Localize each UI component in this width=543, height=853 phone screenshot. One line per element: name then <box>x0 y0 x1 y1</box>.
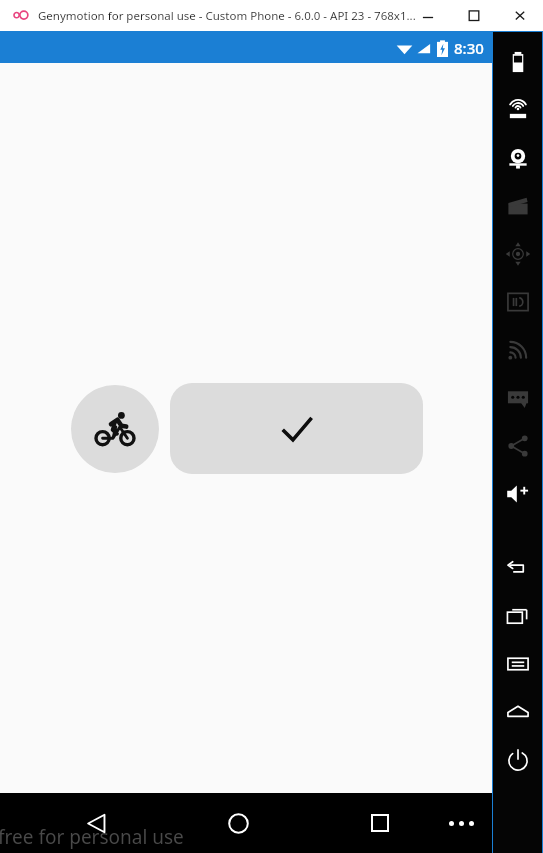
staticText: free for personal use <box>0 824 184 850</box>
button[interactable]: Identifiers <box>493 278 542 326</box>
button[interactable]: Back <box>493 544 542 592</box>
button[interactable]: Menu <box>493 640 542 688</box>
staticText: 8:30 <box>454 38 484 58</box>
button[interactable]: Network <box>493 326 542 374</box>
button[interactable]: Cycling activity <box>71 385 159 473</box>
button[interactable]: Accelerometer <box>493 230 542 278</box>
button[interactable]: Power <box>493 736 542 784</box>
button[interactable]: More options <box>436 793 486 853</box>
button[interactable]: Screen recorder <box>493 182 542 230</box>
button[interactable]: Recent apps <box>344 793 416 853</box>
button[interactable]: Share <box>493 422 542 470</box>
button[interactable]: Minimize <box>405 1 451 31</box>
button[interactable]: Camera <box>493 134 542 182</box>
button[interactable]: GPS <box>493 86 542 134</box>
button[interactable]: SMS <box>493 374 542 422</box>
button[interactable]: Volume up <box>493 470 542 518</box>
button[interactable]: Back <box>60 793 132 853</box>
button[interactable]: Battery <box>493 38 542 86</box>
button[interactable]: Close <box>497 1 543 31</box>
staticText: Genymotion for personal use - Custom Pho… <box>38 8 416 24</box>
button[interactable]: Home <box>202 793 274 853</box>
button[interactable]: Maximize <box>451 1 497 31</box>
button[interactable]: Recent apps <box>493 592 542 640</box>
button[interactable]: Confirm <box>170 383 423 474</box>
button[interactable]: Home <box>493 688 542 736</box>
